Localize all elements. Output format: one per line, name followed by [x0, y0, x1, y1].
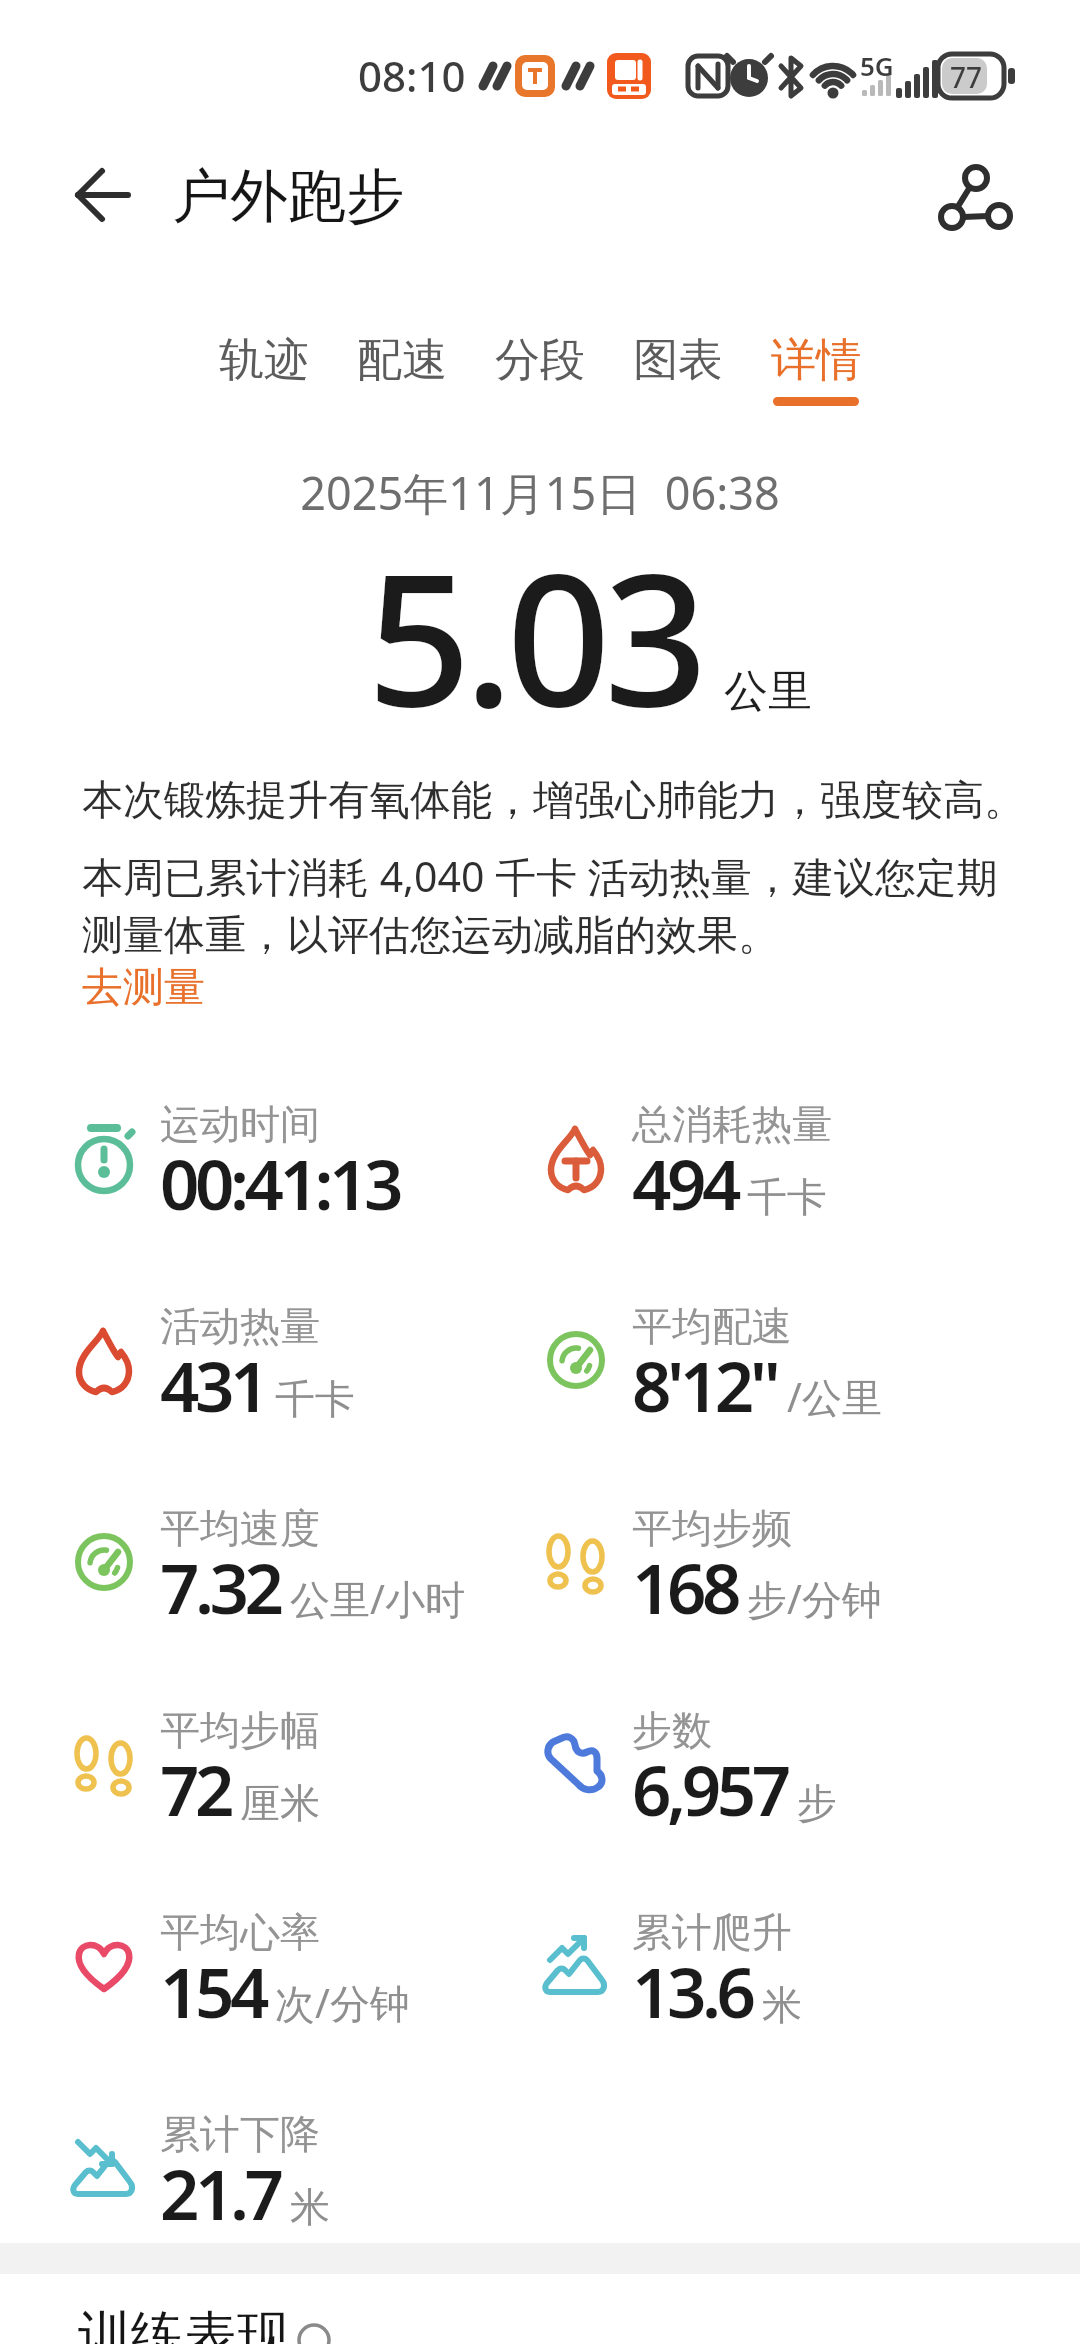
staticText: 图表	[633, 332, 723, 389]
staticText: 配速	[357, 332, 447, 389]
staticText: 活动热量	[160, 1301, 320, 1351]
staticText: 详情	[771, 332, 861, 389]
button[interactable]: 配速	[357, 332, 447, 389]
button[interactable]: 步数	[632, 1705, 837, 1799]
staticText: 轨迹	[219, 332, 309, 389]
button[interactable]: 轨迹	[219, 332, 309, 389]
staticText: 431	[160, 1338, 265, 1432]
button[interactable]	[70, 165, 134, 229]
staticText: 08:10	[358, 47, 466, 104]
staticText: 运动时间	[160, 1099, 320, 1149]
staticText: 千卡	[275, 1374, 355, 1424]
staticText: 平均心率	[160, 1907, 320, 1957]
staticText: 训练表现	[78, 2303, 290, 2344]
staticText: 公里	[724, 664, 812, 719]
staticText: 平均速度	[160, 1503, 320, 1553]
staticText: 72	[160, 1742, 230, 1836]
staticText: 米	[762, 1980, 802, 2030]
staticText: 步	[797, 1778, 837, 1828]
button[interactable]: 平均步幅	[160, 1705, 320, 1799]
button[interactable]: 分段	[495, 332, 585, 389]
staticText: 494	[632, 1136, 737, 1230]
staticText: 步数	[632, 1705, 712, 1755]
staticText: 13.6	[632, 1944, 752, 2038]
staticText: 2025年11月15日 06:38	[0, 462, 1080, 523]
staticText: 累计下降	[160, 2109, 320, 2159]
staticText: 本周已累计消耗 4,040 千卡 活动热量，建议您定期 测量体重，以评估您运动减…	[82, 848, 998, 961]
staticText: 5.03	[367, 511, 701, 759]
button[interactable]: 平均步频	[632, 1503, 882, 1597]
staticText: 平均步频	[632, 1503, 792, 1553]
button[interactable]: 去测量	[82, 962, 205, 1014]
button[interactable]: 详情	[771, 332, 861, 406]
button[interactable]: 平均速度	[160, 1503, 465, 1597]
button[interactable]: 总消耗热量	[632, 1099, 832, 1193]
staticText: 7.32	[160, 1540, 280, 1634]
staticText: 本次锻炼提升有氧体能，增强心肺能力，强度较高。	[82, 775, 1025, 827]
staticText: 次/分钟	[275, 1975, 410, 2030]
button[interactable]: 累计爬升	[632, 1907, 802, 2001]
staticText: 累计爬升	[632, 1907, 792, 1957]
staticText: 154	[160, 1944, 265, 2038]
button[interactable]	[938, 160, 1014, 236]
staticText: 168	[632, 1540, 737, 1634]
staticText: 总消耗热量	[632, 1099, 832, 1149]
button[interactable]: 累计下降	[160, 2109, 330, 2203]
staticText: /公里	[787, 1369, 882, 1424]
staticText: 步/分钟	[747, 1571, 882, 1626]
staticText: 公里/小时	[290, 1571, 465, 1626]
staticText: 户外跑步	[172, 160, 404, 233]
button[interactable]: 活动热量	[160, 1301, 355, 1395]
staticText: 平均步幅	[160, 1705, 320, 1755]
button[interactable]: 运动时间	[160, 1099, 399, 1193]
button[interactable]: 图表	[633, 332, 723, 389]
staticText: 8'12"	[632, 1338, 777, 1432]
staticText: 6,957	[632, 1742, 787, 1836]
staticText: 厘米	[240, 1778, 320, 1828]
staticText: 千卡	[747, 1172, 827, 1222]
staticText: 5G	[860, 48, 894, 83]
staticText: 00:41:13	[160, 1136, 399, 1230]
staticText: 分段	[495, 332, 585, 389]
button[interactable]: 平均配速	[632, 1301, 882, 1395]
staticText: 21.7	[160, 2146, 280, 2240]
staticText: 平均配速	[632, 1301, 792, 1351]
staticText: 77	[950, 58, 983, 96]
staticText: 米	[290, 2182, 330, 2232]
button[interactable]: 平均心率	[160, 1907, 410, 2001]
